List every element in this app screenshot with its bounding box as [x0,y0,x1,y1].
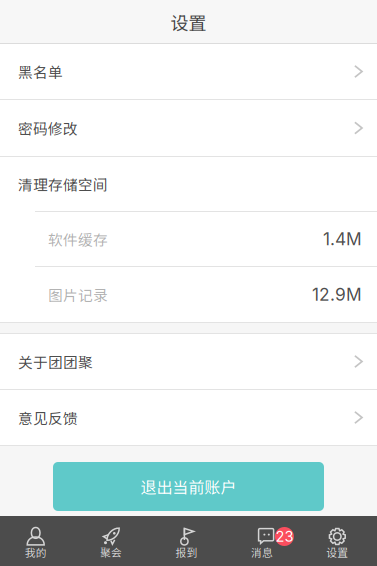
button[interactable]: 图片记录 [0,267,377,323]
staticText: 12.9M [312,284,362,305]
button[interactable]: 退出当前账户 [53,462,324,511]
button[interactable]: 关于团团聚 [0,334,377,390]
staticText: 我的 [25,544,47,560]
staticText: 退出当前账户 [140,475,236,498]
staticText: 清理存储空间 [18,173,108,195]
button[interactable]: 设置 [302,516,377,566]
button[interactable]: 报到 [151,516,226,566]
button[interactable]: 软件缓存 [0,212,377,267]
staticText: 23 [275,528,293,545]
button[interactable]: 我的 [0,516,75,566]
button[interactable]: 聚会 [75,516,151,566]
staticText: 1.4M [323,228,362,249]
staticText: 报到 [175,544,197,560]
button[interactable]: 密码修改 [0,100,377,157]
staticText: 消息 [251,544,273,560]
staticText: 图片记录 [48,284,108,305]
staticText: 关于团团聚 [18,351,93,372]
staticText: 黑名单 [18,61,63,82]
staticText: 密码修改 [18,117,78,139]
staticText: 软件缓存 [48,228,108,250]
staticText: 意见反馈 [18,407,78,428]
button[interactable]: 黑名单 [0,44,377,100]
staticText: 聚会 [100,544,122,560]
button[interactable]: 消息 [226,516,302,566]
staticText: 设置 [170,9,206,35]
staticText: 设置 [326,544,348,560]
button[interactable]: 意见反馈 [0,390,377,446]
